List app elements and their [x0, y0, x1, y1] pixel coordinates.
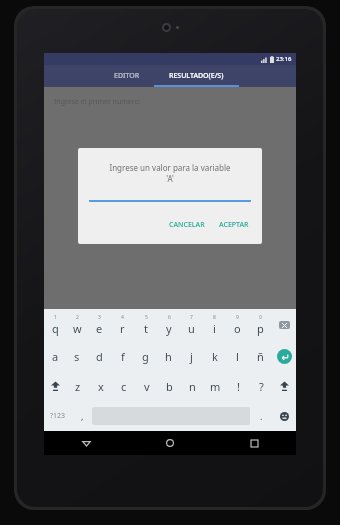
- staticText: f: [121, 349, 125, 364]
- button[interactable]: x: [89, 371, 112, 401]
- staticText: z: [75, 379, 81, 394]
- staticText: h: [165, 349, 172, 364]
- button[interactable]: a: [44, 341, 66, 371]
- staticText: m: [210, 379, 221, 394]
- staticText: EDITOR: [114, 71, 140, 81]
- staticText: Ingrese el primer numero:: [54, 97, 141, 107]
- button[interactable]: ñ: [249, 341, 272, 371]
- button[interactable]: 0: [249, 309, 272, 341]
- staticText: 1: [54, 314, 57, 321]
- button[interactable]: ?: [250, 371, 273, 401]
- button[interactable]: 3: [88, 309, 111, 341]
- button[interactable]: Shift: [44, 371, 66, 401]
- button[interactable]: Emoji: [272, 401, 296, 431]
- staticText: x: [98, 379, 104, 394]
- button[interactable]: c: [112, 371, 135, 401]
- button[interactable]: RESULTADO(E/S): [154, 65, 239, 87]
- button[interactable]: !: [227, 371, 250, 401]
- button[interactable]: k: [203, 341, 226, 371]
- staticText: 8: [213, 314, 216, 321]
- staticText: w: [73, 321, 82, 336]
- button[interactable]: n: [181, 371, 204, 401]
- staticText: b: [166, 379, 173, 394]
- staticText: p: [257, 321, 264, 336]
- staticText: ,: [81, 410, 84, 422]
- staticText: ñ: [257, 349, 264, 364]
- button[interactable]: b: [158, 371, 181, 401]
- button[interactable]: 6: [157, 309, 180, 341]
- button[interactable]: .: [250, 401, 272, 431]
- staticText: j: [190, 349, 193, 364]
- staticText: 23:16: [276, 55, 292, 63]
- staticText: 3: [98, 314, 101, 321]
- staticText: l: [236, 349, 239, 364]
- staticText: 4: [121, 314, 124, 321]
- staticText: r: [120, 321, 125, 336]
- staticText: i: [213, 321, 216, 336]
- staticText: Ingrese un valor para la variable 'A': [92, 162, 248, 184]
- staticText: .: [260, 410, 263, 422]
- staticText: c: [121, 379, 127, 394]
- button[interactable]: 5: [134, 309, 157, 341]
- button[interactable]: 7: [180, 309, 203, 341]
- button[interactable]: CANCELAR: [166, 218, 208, 232]
- staticText: RESULTADO(E/S): [169, 71, 224, 81]
- button[interactable]: h: [157, 341, 180, 371]
- button[interactable]: l: [226, 341, 249, 371]
- staticText: s: [74, 349, 80, 364]
- button[interactable]: z: [66, 371, 89, 401]
- button[interactable]: 4: [111, 309, 134, 341]
- staticText: 7: [190, 314, 193, 321]
- staticText: e: [96, 321, 103, 336]
- staticText: q: [52, 321, 59, 336]
- staticText: g: [142, 349, 149, 364]
- button[interactable]: Home: [128, 431, 212, 455]
- button[interactable]: 2: [66, 309, 88, 341]
- staticText: t: [144, 321, 148, 336]
- button[interactable]: Backspace: [272, 309, 296, 341]
- staticText: ?123: [50, 411, 66, 421]
- button[interactable]: s: [66, 341, 88, 371]
- staticText: CANCELAR: [169, 220, 205, 230]
- button[interactable]: ACEPTAR: [216, 218, 252, 232]
- button[interactable]: v: [135, 371, 158, 401]
- staticText: ?: [259, 379, 264, 394]
- button[interactable]: Enter: [272, 341, 296, 371]
- button[interactable]: Back: [44, 431, 128, 455]
- staticText: k: [212, 349, 218, 364]
- staticText: 0: [259, 314, 262, 321]
- button[interactable]: j: [180, 341, 203, 371]
- button[interactable]: 9: [226, 309, 249, 341]
- staticText: d: [96, 349, 103, 364]
- staticText: v: [144, 379, 150, 394]
- button[interactable]: d: [88, 341, 111, 371]
- staticText: 9: [236, 314, 239, 321]
- staticText: 2: [76, 314, 79, 321]
- button[interactable]: 8: [203, 309, 226, 341]
- staticText: u: [188, 321, 195, 336]
- staticText: y: [166, 321, 172, 336]
- button[interactable]: 1: [44, 309, 66, 341]
- staticText: ACEPTAR: [219, 220, 249, 230]
- button[interactable]: Shift: [273, 371, 296, 401]
- staticText: n: [189, 379, 196, 394]
- button[interactable]: ?123: [44, 401, 72, 431]
- button[interactable]: m: [204, 371, 227, 401]
- staticText: !: [237, 379, 240, 394]
- staticText: o: [234, 321, 241, 336]
- button[interactable]: g: [134, 341, 157, 371]
- button[interactable]: Recents: [212, 431, 296, 455]
- button[interactable]: EDITOR: [99, 65, 154, 87]
- button[interactable]: f: [111, 341, 134, 371]
- staticText: 5: [145, 314, 148, 321]
- staticText: a: [52, 349, 59, 364]
- staticText: 6: [168, 314, 171, 321]
- button[interactable]: ,: [72, 401, 92, 431]
